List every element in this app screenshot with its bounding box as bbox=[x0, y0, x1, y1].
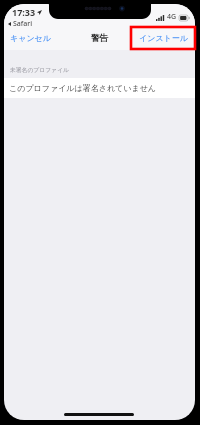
staticText: キャンセル bbox=[10, 33, 51, 43]
button[interactable]: このプロファイルは署名されていません bbox=[4, 78, 195, 98]
staticText: このプロファイルは署名されていません bbox=[9, 83, 156, 93]
staticText: 4G bbox=[167, 12, 177, 22]
staticText: 17:33 bbox=[12, 6, 36, 18]
button[interactable]: インストール bbox=[133, 29, 195, 47]
staticText: Safari bbox=[13, 19, 33, 29]
staticText: 警告 bbox=[91, 33, 109, 44]
button[interactable]: キャンセル bbox=[4, 29, 57, 47]
staticText: インストール bbox=[139, 33, 188, 43]
staticText: 未署名のプロファイル bbox=[10, 66, 69, 73]
button[interactable]: Safari bbox=[6, 17, 35, 31]
